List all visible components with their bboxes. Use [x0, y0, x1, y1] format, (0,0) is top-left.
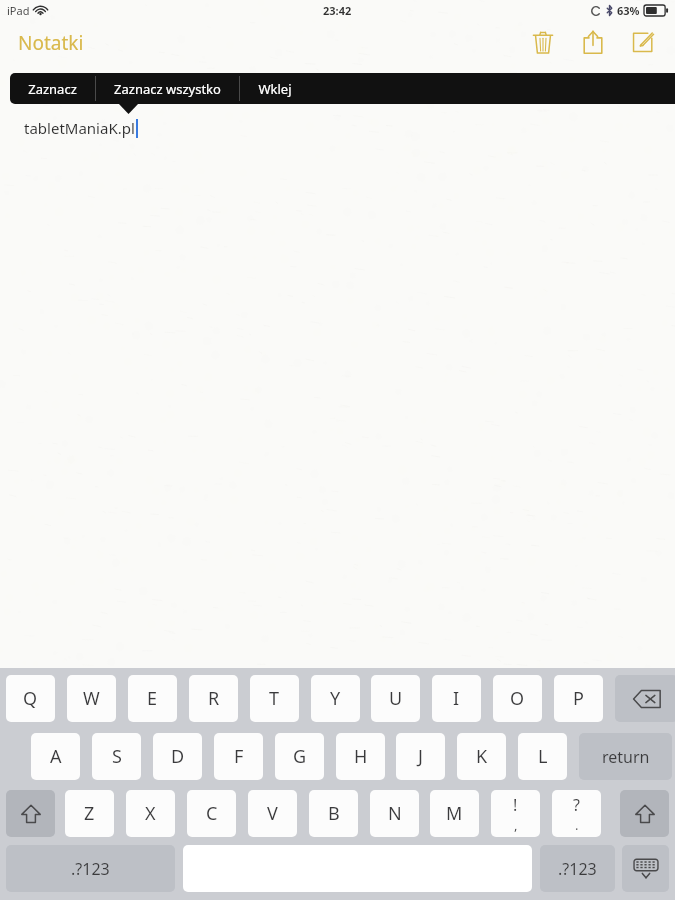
- staticText: return: [602, 746, 650, 768]
- staticText: Zaznacz: [28, 80, 77, 98]
- staticText: Zaznacz wszystko: [114, 80, 221, 98]
- staticText: .: [575, 816, 579, 834]
- staticText: O: [510, 686, 525, 711]
- staticText: ,: [514, 816, 518, 834]
- button[interactable]: C: [187, 790, 236, 837]
- staticText: I: [453, 686, 460, 711]
- staticText: Z: [84, 801, 95, 826]
- staticText: TM: [554, 837, 618, 898]
- staticText: !: [513, 794, 518, 816]
- staticText: X: [145, 801, 156, 826]
- button[interactable]: Shift: [620, 790, 669, 837]
- button[interactable]: E: [128, 675, 177, 722]
- staticText: H: [354, 744, 368, 769]
- button[interactable]: .?123: [6, 845, 175, 892]
- button[interactable]: U: [371, 675, 420, 722]
- button[interactable]: .?123: [540, 845, 615, 892]
- button[interactable]: G: [275, 733, 324, 780]
- staticText: R: [208, 686, 220, 711]
- button[interactable]: L: [518, 733, 567, 780]
- staticText: W: [83, 686, 100, 711]
- staticText: .?123: [71, 858, 110, 880]
- staticText: G: [293, 744, 307, 769]
- button[interactable]: R: [189, 675, 238, 722]
- button[interactable]: T: [250, 675, 299, 722]
- button[interactable]: Backspace: [615, 675, 675, 722]
- staticText: Notatki: [18, 30, 84, 56]
- button[interactable]: ?: [552, 790, 601, 837]
- button[interactable]: Shift: [6, 790, 55, 837]
- button[interactable]: !: [491, 790, 540, 837]
- button[interactable]: X: [126, 790, 175, 837]
- staticText: B: [328, 801, 340, 826]
- button[interactable]: F: [214, 733, 263, 780]
- button[interactable]: K: [457, 733, 506, 780]
- staticText: S: [112, 744, 122, 769]
- staticText: .?123: [558, 858, 597, 880]
- button[interactable]: A: [31, 733, 80, 780]
- staticText: Q: [23, 686, 38, 711]
- button[interactable]: Notatki: [10, 26, 92, 60]
- staticText: 63%: [617, 3, 640, 18]
- button[interactable]: Hide keyboard: [622, 845, 669, 892]
- button[interactable]: N: [370, 790, 419, 837]
- button[interactable]: V: [248, 790, 297, 837]
- staticText: tabletManiaK.pl: [24, 118, 135, 138]
- button[interactable]: Q: [6, 675, 55, 722]
- staticText: L: [538, 744, 548, 769]
- button[interactable]: S: [92, 733, 141, 780]
- staticText: N: [388, 801, 402, 826]
- staticText: A: [50, 744, 62, 769]
- staticText: J: [418, 744, 423, 769]
- button[interactable]: Zaznacz wszystko: [96, 73, 239, 104]
- staticText: P: [573, 686, 584, 711]
- staticText: Wklej: [258, 80, 292, 98]
- button[interactable]: Z: [65, 790, 114, 837]
- staticText: Y: [330, 686, 341, 711]
- staticText: E: [147, 686, 158, 711]
- button[interactable]: P: [554, 675, 603, 722]
- staticText: K: [476, 744, 488, 769]
- staticText: V: [267, 801, 278, 826]
- button[interactable]: D: [153, 733, 202, 780]
- button[interactable]: M: [430, 790, 479, 837]
- staticText: F: [234, 744, 244, 769]
- button[interactable]: B: [309, 790, 358, 837]
- button[interactable]: return: [579, 733, 672, 780]
- button[interactable]: Delete note: [521, 24, 565, 60]
- button[interactable]: Y: [311, 675, 360, 722]
- staticText: 23:42: [323, 3, 352, 18]
- button[interactable]: I: [432, 675, 481, 722]
- button[interactable]: J: [396, 733, 445, 780]
- staticText: C: [206, 801, 218, 826]
- button[interactable]: Compose new note: [621, 24, 665, 60]
- staticText: M: [446, 801, 463, 826]
- staticText: T: [269, 686, 280, 711]
- button[interactable]: Share: [571, 24, 615, 60]
- button[interactable]: Wklej: [240, 73, 309, 104]
- button[interactable]: W: [67, 675, 116, 722]
- button[interactable]: O: [493, 675, 542, 722]
- button[interactable]: Zaznacz: [10, 73, 95, 104]
- staticText: iPad: [7, 3, 30, 18]
- staticText: ?: [573, 794, 580, 816]
- staticText: D: [171, 744, 185, 769]
- staticText: U: [389, 686, 403, 711]
- button[interactable]: H: [336, 733, 385, 780]
